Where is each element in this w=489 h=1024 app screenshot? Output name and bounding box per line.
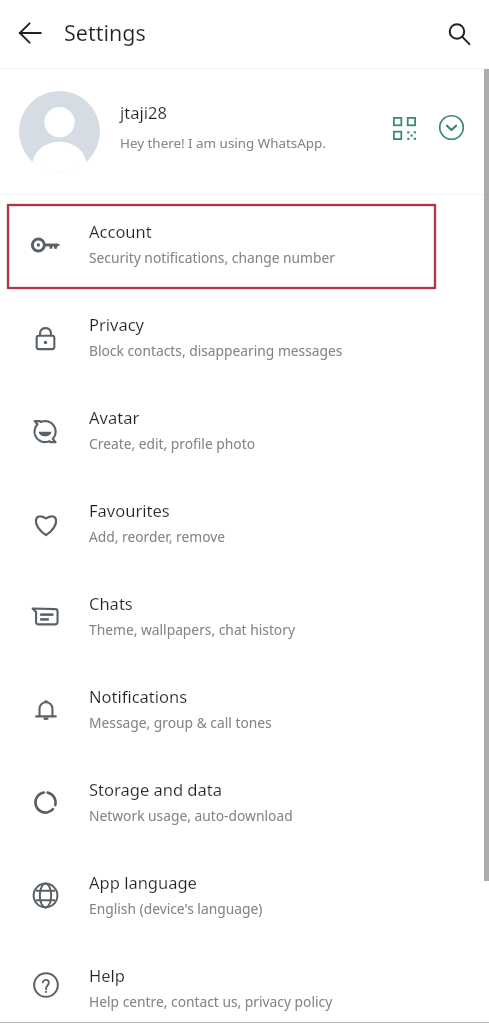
button[interactable]: Back — [6, 9, 54, 57]
button[interactable]: QR code — [382, 106, 427, 151]
staticText: Network usage, auto-download — [89, 806, 293, 825]
staticText: Block contacts, disappearing messages — [89, 341, 343, 360]
button[interactable]: Notifications — [0, 660, 489, 753]
button[interactable]: App language — [0, 846, 489, 939]
staticText: Create, edit, profile photo — [89, 434, 255, 453]
staticText: Account — [89, 220, 152, 242]
button[interactable]: Account — [0, 195, 489, 288]
button[interactable]: Avatar — [0, 381, 489, 474]
staticText: Theme, wallpapers, chat history — [89, 620, 295, 639]
staticText: Settings — [64, 18, 146, 47]
staticText: Add, reorder, remove — [89, 527, 226, 546]
staticText: Privacy — [89, 313, 145, 335]
staticText: Help centre, contact us, privacy policy — [89, 992, 333, 1011]
button[interactable]: Storage and data — [0, 753, 489, 846]
button[interactable]: Expand profile — [429, 105, 474, 150]
staticText: Storage and data — [89, 778, 222, 800]
button[interactable]: jtaji28 — [0, 69, 489, 194]
staticText: App language — [89, 871, 197, 893]
button[interactable]: Privacy — [0, 288, 489, 381]
staticText: jtaji28 — [120, 101, 167, 123]
button[interactable]: Chats — [0, 567, 489, 660]
staticText: Favourites — [89, 499, 170, 521]
staticText: Hey there! I am using WhatsApp. — [120, 134, 326, 152]
staticText: Notifications — [89, 685, 188, 707]
staticText: Help — [89, 964, 125, 986]
staticText: English (device's language) — [89, 899, 263, 918]
staticText: Message, group & call tones — [89, 713, 272, 732]
button[interactable]: Search — [435, 10, 483, 58]
staticText: Security notifications, change number — [89, 248, 335, 267]
staticText: Chats — [89, 592, 133, 614]
staticText: Avatar — [89, 406, 140, 428]
button[interactable]: Favourites — [0, 474, 489, 567]
button[interactable]: Help — [0, 939, 489, 1024]
